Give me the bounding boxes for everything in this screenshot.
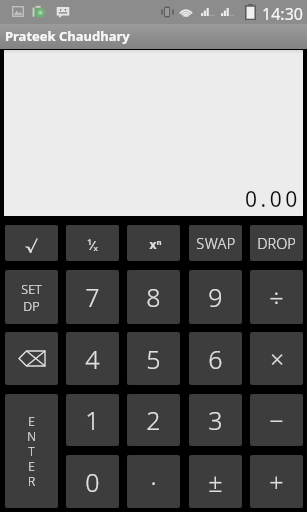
button[interactable]: DROP: [250, 225, 303, 261]
button[interactable]: −: [250, 394, 303, 446]
staticText: ×: [270, 342, 284, 375]
staticText: Prateek Chaudhary: [5, 27, 130, 45]
staticText: 0: [85, 465, 100, 499]
staticText: 8: [146, 280, 161, 314]
button[interactable]: +: [250, 455, 303, 508]
button[interactable]: 1: [66, 394, 119, 446]
staticText: 2: [146, 403, 161, 437]
button[interactable]: 8: [127, 270, 180, 324]
button[interactable]: Reciprocal: [66, 225, 119, 261]
button[interactable]: ÷: [250, 270, 303, 324]
staticText: ÷: [269, 280, 284, 314]
staticText: 5: [146, 342, 161, 376]
staticText: 14:30: [262, 3, 303, 25]
staticText: DROP: [257, 233, 296, 253]
staticText: 9: [208, 280, 223, 314]
staticText: xⁿ: [149, 236, 162, 252]
button[interactable]: ×: [250, 332, 303, 385]
staticText: SET DP: [21, 281, 42, 314]
staticText: ·: [150, 465, 157, 499]
staticText: 1: [85, 403, 100, 437]
staticText: −: [269, 403, 284, 437]
button[interactable]: SWAP: [189, 225, 242, 261]
button[interactable]: ·: [127, 455, 180, 508]
staticText: +: [269, 465, 284, 499]
staticText: ±: [208, 465, 223, 499]
button[interactable]: 9: [189, 270, 242, 324]
staticText: 4: [85, 342, 100, 376]
button[interactable]: E N T E R: [5, 394, 58, 508]
button[interactable]: ±: [189, 455, 242, 508]
button[interactable]: Backspace: [5, 332, 58, 385]
staticText: ¹⁄ₓ: [87, 236, 98, 254]
staticText: 3: [208, 403, 223, 437]
button[interactable]: 5: [127, 332, 180, 385]
button[interactable]: Power: [127, 225, 180, 261]
staticText: E N T E R: [27, 413, 36, 489]
staticText: 6: [208, 342, 223, 376]
button[interactable]: 3: [189, 394, 242, 446]
button[interactable]: 4: [66, 332, 119, 385]
button[interactable]: Square root: [5, 225, 58, 261]
button[interactable]: 6: [189, 332, 242, 385]
button[interactable]: 2: [127, 394, 180, 446]
staticText: 0.00: [245, 185, 301, 214]
staticText: SWAP: [196, 233, 236, 253]
button[interactable]: 7: [66, 270, 119, 324]
button[interactable]: SET DP: [5, 270, 58, 324]
staticText: 7: [85, 280, 100, 314]
button[interactable]: 0: [66, 455, 119, 508]
